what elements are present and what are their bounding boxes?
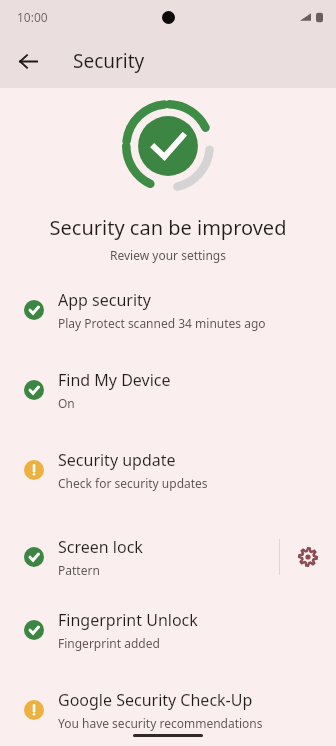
button[interactable]: Back <box>8 41 48 81</box>
button[interactable]: Find My Device <box>0 369 336 449</box>
staticText: Play Protect scanned 34 minutes ago <box>58 315 266 331</box>
staticText: Screen lock <box>58 536 143 558</box>
staticText: Security can be improved <box>0 214 336 241</box>
staticText: Find My Device <box>58 369 171 391</box>
staticText: Security <box>73 48 145 74</box>
button[interactable]: Fingerprint Unlock <box>0 609 336 689</box>
staticText: Fingerprint added <box>58 635 160 651</box>
staticText: On <box>58 395 75 411</box>
staticText: Google Security Check-Up <box>58 689 253 711</box>
staticText: You have security recommendations <box>58 715 263 731</box>
staticText: App security <box>58 289 151 311</box>
staticText: Review your settings <box>0 247 336 263</box>
button[interactable]: Google Security Check-Up <box>0 689 336 746</box>
button[interactable]: Screen lock <box>0 529 336 609</box>
button[interactable]: Screen lock settings <box>280 529 336 585</box>
staticText: Security update <box>58 449 176 471</box>
staticText: Check for security updates <box>58 475 208 491</box>
staticText: Pattern <box>58 562 100 578</box>
staticText: Fingerprint Unlock <box>58 609 198 631</box>
button[interactable]: Security update <box>0 449 336 529</box>
button[interactable]: App security <box>0 289 336 369</box>
staticText: 10:00 <box>17 9 48 25</box>
